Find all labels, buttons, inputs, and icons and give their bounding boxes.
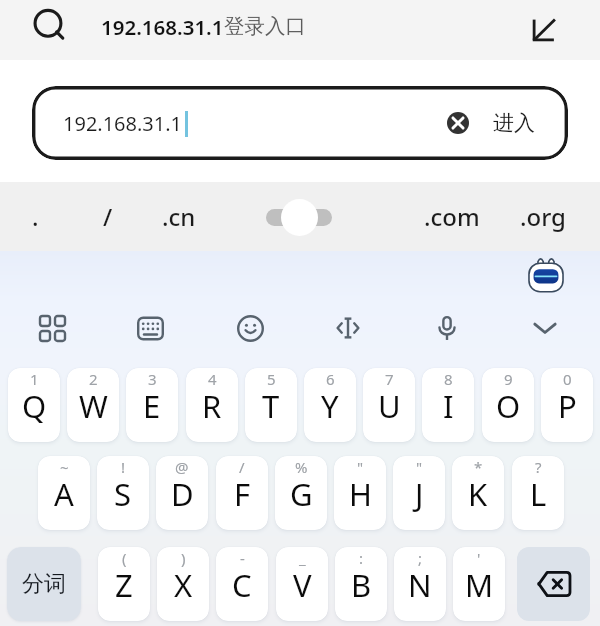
staticText: 0 bbox=[563, 369, 572, 389]
button[interactable]: Keyboard modes bbox=[26, 302, 78, 354]
button[interactable]: Hide keyboard bbox=[519, 302, 571, 354]
button[interactable]: " bbox=[334, 456, 386, 530]
button[interactable]: / bbox=[72, 182, 144, 251]
staticText: T bbox=[262, 385, 280, 427]
staticText: .cn bbox=[162, 200, 196, 233]
staticText: 192.168.31.1 bbox=[63, 110, 183, 137]
staticText: F bbox=[234, 473, 251, 515]
staticText: V bbox=[293, 564, 312, 606]
button[interactable]: 0 bbox=[541, 368, 593, 442]
staticText: H bbox=[349, 473, 372, 515]
staticText: 2 bbox=[89, 369, 98, 389]
staticText: ; bbox=[418, 548, 423, 568]
button[interactable]: 3 bbox=[126, 368, 178, 442]
staticText: E bbox=[143, 385, 161, 427]
button[interactable]: Keyboard layout bbox=[124, 302, 176, 354]
button[interactable]: 9 bbox=[482, 368, 534, 442]
staticText: 3 bbox=[148, 369, 157, 389]
button[interactable]: ! bbox=[97, 456, 149, 530]
staticText: N bbox=[408, 564, 432, 606]
button[interactable]: ~ bbox=[38, 456, 90, 530]
staticText: .org bbox=[520, 200, 566, 233]
button[interactable]: .com bbox=[416, 182, 488, 251]
button[interactable]: " bbox=[393, 456, 445, 530]
button[interactable]: Text editing bbox=[322, 302, 374, 354]
staticText: Z bbox=[115, 564, 133, 606]
staticText: _ bbox=[299, 548, 306, 568]
staticText: 8 bbox=[444, 369, 453, 389]
staticText: M bbox=[465, 564, 494, 606]
staticText: 4 bbox=[208, 369, 217, 389]
button[interactable]: 2 bbox=[67, 368, 119, 442]
button[interactable]: 8 bbox=[422, 368, 474, 442]
staticText: Y bbox=[321, 385, 339, 427]
button[interactable]: 7 bbox=[363, 368, 415, 442]
staticText: . bbox=[32, 200, 39, 233]
staticText: 分词 bbox=[22, 570, 66, 598]
staticText: 进入 bbox=[493, 110, 535, 136]
staticText: ' bbox=[477, 548, 481, 568]
staticText: J bbox=[415, 473, 424, 515]
button[interactable]: @ bbox=[156, 456, 208, 530]
staticText: 5 bbox=[267, 369, 276, 389]
button[interactable]: Search bbox=[26, 3, 72, 49]
button[interactable]: 1 bbox=[8, 368, 60, 442]
staticText: 6 bbox=[326, 369, 335, 389]
staticText: Q bbox=[22, 385, 47, 427]
button[interactable]: .org bbox=[507, 182, 579, 251]
staticText: A bbox=[54, 473, 74, 515]
button[interactable]: ' bbox=[453, 547, 505, 621]
staticText: K bbox=[468, 473, 488, 515]
button[interactable]: ? bbox=[512, 456, 564, 530]
button[interactable]: 进入 bbox=[484, 95, 544, 151]
staticText: 登录入口 bbox=[224, 13, 306, 39]
button[interactable]: ; bbox=[394, 547, 446, 621]
staticText: * bbox=[474, 457, 483, 477]
button[interactable]: .cn bbox=[143, 182, 215, 251]
staticText: @ bbox=[175, 457, 189, 477]
button[interactable]: Collapse bbox=[524, 10, 564, 50]
button[interactable]: : bbox=[335, 547, 387, 621]
button[interactable]: 192.168.31.1 bbox=[32, 86, 568, 160]
staticText: " bbox=[416, 457, 423, 477]
button[interactable]: - bbox=[216, 547, 268, 621]
button[interactable]: . bbox=[0, 182, 71, 251]
button[interactable]: * bbox=[452, 456, 504, 530]
staticText: ( bbox=[122, 548, 127, 568]
staticText: W bbox=[79, 385, 108, 427]
button[interactable]: ( bbox=[98, 547, 150, 621]
button[interactable]: Clear bbox=[438, 103, 478, 143]
button[interactable]: 5 bbox=[245, 368, 297, 442]
staticText: R bbox=[202, 385, 222, 427]
button[interactable]: Emoji bbox=[224, 302, 276, 354]
staticText: S bbox=[114, 473, 132, 515]
staticText: C bbox=[232, 564, 252, 606]
staticText: - bbox=[240, 548, 245, 568]
staticText: 9 bbox=[504, 369, 513, 389]
staticText: : bbox=[359, 548, 364, 568]
staticText: B bbox=[351, 564, 372, 606]
staticText: U bbox=[378, 385, 401, 427]
staticText: .com bbox=[424, 200, 480, 233]
button[interactable]: / bbox=[216, 456, 268, 530]
button[interactable]: 4 bbox=[186, 368, 238, 442]
staticText: / bbox=[239, 457, 245, 477]
button[interactable]: ) bbox=[157, 547, 209, 621]
staticText: ! bbox=[121, 457, 126, 477]
staticText: 7 bbox=[385, 369, 394, 389]
staticText: D bbox=[171, 473, 194, 515]
staticText: ) bbox=[181, 548, 186, 568]
button[interactable]: 6 bbox=[304, 368, 356, 442]
button[interactable]: Drag handle bbox=[261, 194, 337, 240]
button[interactable]: Assistant bbox=[523, 254, 569, 300]
staticText: % bbox=[295, 457, 308, 477]
staticText: " bbox=[357, 457, 364, 477]
button[interactable]: _ bbox=[276, 547, 328, 621]
button[interactable]: Voice input bbox=[421, 302, 473, 354]
button[interactable]: % bbox=[275, 456, 327, 530]
button[interactable]: 分词 bbox=[7, 547, 81, 621]
staticText: 1 bbox=[30, 369, 39, 389]
staticText: ~ bbox=[60, 457, 69, 477]
staticText: 192.168.31.1 bbox=[101, 13, 224, 41]
button[interactable]: Backspace bbox=[517, 547, 590, 621]
